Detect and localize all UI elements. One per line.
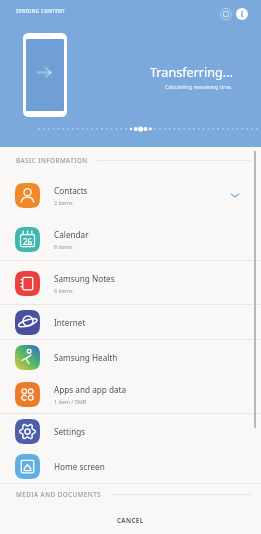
- button[interactable]: Settings: [0, 414, 261, 449]
- staticText: Settings: [54, 426, 86, 437]
- staticText: Calendar: [54, 229, 89, 240]
- staticText: 6 items: [54, 243, 73, 250]
- button[interactable]: Expand: [227, 187, 243, 203]
- staticText: Apps and app data: [54, 384, 127, 395]
- staticText: MEDIA AND DOCUMENTS: [16, 490, 102, 499]
- button[interactable]: Home screen: [0, 449, 261, 484]
- staticText: Contacts: [54, 185, 88, 196]
- staticText: 1 item / 5MB: [54, 398, 87, 405]
- staticText: Calculating remaining time.: [165, 83, 233, 90]
- button[interactable]: 26: [0, 217, 261, 261]
- button[interactable]: Help: [220, 8, 232, 20]
- staticText: BASIC INFORMATION: [16, 156, 88, 165]
- button[interactable]: Samsung Notes: [0, 261, 261, 305]
- staticText: Samsung Health: [54, 352, 118, 363]
- button[interactable]: Samsung Health: [0, 340, 261, 374]
- staticText: 6 items: [54, 287, 73, 294]
- staticText: Samsung Notes: [54, 273, 115, 284]
- button[interactable]: Internet: [0, 305, 261, 340]
- button[interactable]: Apps and app data: [0, 374, 261, 414]
- staticText: Home screen: [54, 461, 105, 472]
- button[interactable]: Details: [236, 8, 248, 20]
- staticText: 2 items: [54, 199, 73, 206]
- staticText: 26: [23, 236, 33, 247]
- staticText: SENDING CONTENT: [16, 8, 66, 14]
- staticText: CANCEL: [117, 516, 144, 524]
- button[interactable]: Contacts: [0, 173, 261, 217]
- staticText: Internet: [54, 317, 86, 328]
- staticText: Transferring...: [150, 64, 233, 81]
- button[interactable]: CANCEL: [97, 510, 164, 530]
